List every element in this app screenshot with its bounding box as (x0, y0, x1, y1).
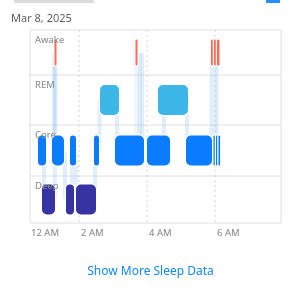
button[interactable]: Show More Sleep Data (79, 258, 222, 282)
staticText: Deep (35, 179, 59, 192)
staticText: 6 AM (217, 226, 240, 239)
staticText: REM (35, 78, 55, 91)
staticText: 2 AM (81, 226, 104, 239)
staticText: Mar 8, 2025 (11, 10, 72, 25)
staticText: Awake (35, 33, 65, 46)
staticText: 12 AM (31, 226, 60, 239)
staticText: 4 AM (149, 226, 172, 239)
staticText: Core (35, 128, 56, 141)
staticText: Show More Sleep Data (87, 262, 214, 278)
